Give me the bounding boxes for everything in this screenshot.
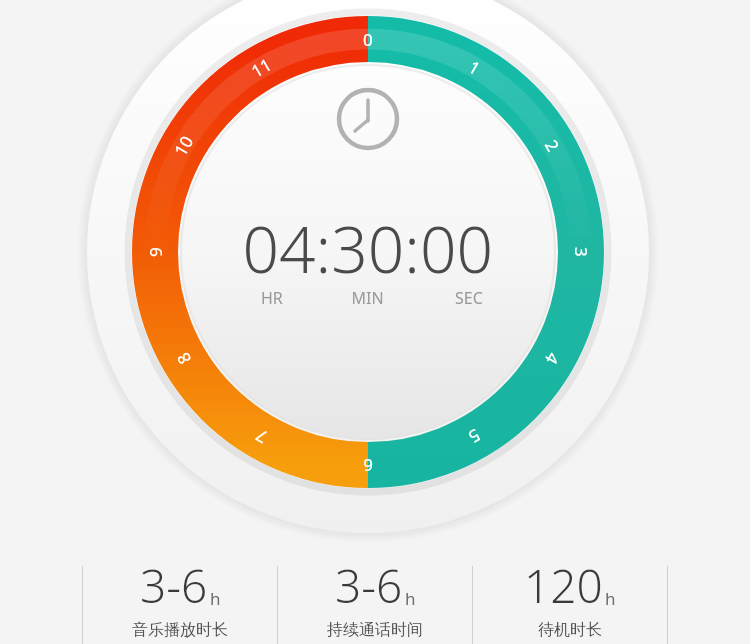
staticText: 120 [524,554,603,617]
staticText: 音乐播放时长 [132,620,228,640]
staticText: 3-6 [140,554,208,617]
staticText: h [405,587,416,610]
staticText: h [605,587,616,610]
button[interactable]: 120 [473,554,667,644]
staticText: 待机时长 [538,620,602,640]
button[interactable]: 3-6 [278,554,472,644]
staticText: 3-6 [335,554,403,617]
button[interactable]: 3-6 [83,554,277,644]
staticText: 持续通话时间 [327,620,423,640]
staticText: h [210,587,221,610]
button[interactable]: Timer dial 04:30:00 [0,0,750,545]
